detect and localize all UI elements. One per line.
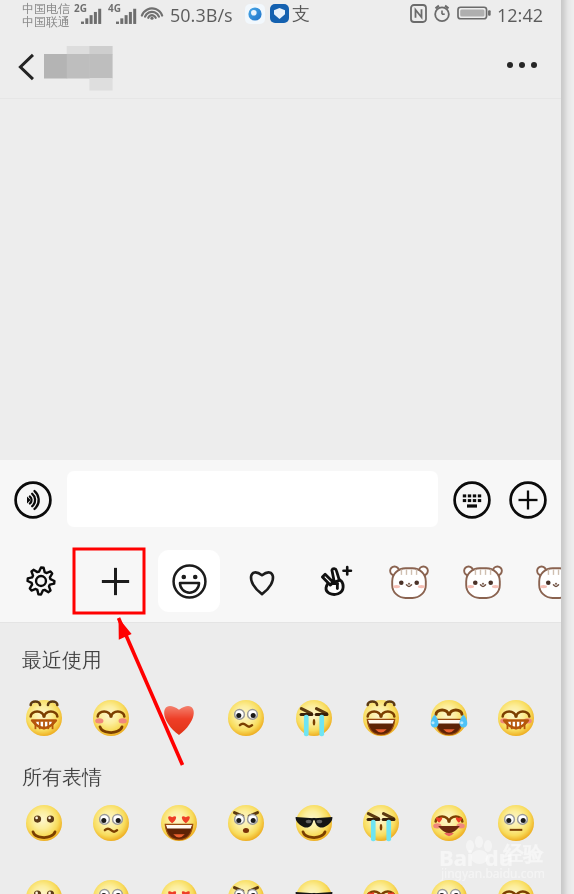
button[interactable]: Emoji 7	[498, 700, 534, 736]
button[interactable]: Emoji 20	[296, 880, 332, 894]
staticText: 所有表情	[22, 765, 102, 790]
button[interactable]: Emoji 8	[26, 805, 62, 841]
button[interactable]: More options	[496, 43, 548, 87]
button[interactable]: Keyboard	[453, 481, 491, 519]
staticText: 最近使用	[22, 648, 102, 673]
button[interactable]: Emoji 16	[26, 880, 62, 894]
staticText: 支	[292, 3, 310, 26]
button[interactable]: Emoji 21	[363, 880, 399, 894]
button[interactable]: Emoji 15	[498, 805, 534, 841]
button[interactable]: Sticker pack 1	[377, 549, 441, 613]
button[interactable]: Emoji 22	[431, 880, 467, 894]
button[interactable]: Emoji 5	[363, 700, 399, 736]
staticText: jingyan.baidu.com	[441, 865, 545, 881]
button[interactable]: Add sticker pack	[83, 549, 147, 613]
button[interactable]: Sticker pack 2	[451, 549, 515, 613]
staticText: 中国电信	[22, 1, 70, 16]
button[interactable]: Sticker pack 3	[524, 549, 574, 613]
button[interactable]: Emoji 1	[93, 700, 129, 736]
staticText: 经验	[503, 842, 543, 867]
button[interactable]: Favorites	[230, 549, 294, 613]
staticText: 50.3B/s	[170, 3, 233, 28]
button[interactable]: Emoji 18	[161, 880, 197, 894]
button[interactable]: Emoji 14	[431, 805, 467, 841]
button[interactable]: Emoji 13	[363, 805, 399, 841]
button[interactable]: Emoji 10	[161, 805, 197, 841]
button[interactable]: Emoji 17	[93, 880, 129, 894]
button[interactable]: Settings	[9, 549, 73, 613]
button[interactable]: Emoji 2	[161, 700, 197, 736]
button[interactable]: Emoji	[158, 550, 220, 612]
staticText: 4G	[108, 1, 121, 15]
button[interactable]: Emoji 3	[228, 700, 264, 736]
button[interactable]: Emoji 9	[93, 805, 129, 841]
button[interactable]: Back	[4, 45, 48, 89]
button[interactable]: Emoji 6	[431, 700, 467, 736]
button[interactable]: Emoji 23	[498, 880, 534, 894]
button[interactable]: Emoji 0	[26, 700, 62, 736]
staticText: 2G	[74, 1, 87, 15]
staticText: 12:42	[497, 3, 544, 28]
button[interactable]: Gesture stickers	[304, 549, 368, 613]
button[interactable]: Voice message	[14, 481, 52, 519]
staticText: 中国联通	[22, 14, 70, 29]
button[interactable]: Emoji 11	[228, 805, 264, 841]
staticText: Bai du	[439, 842, 514, 872]
button[interactable]: Emoji 12	[296, 805, 332, 841]
button[interactable]: Emoji 19	[228, 880, 264, 894]
button[interactable]: Emoji 4	[296, 700, 332, 736]
button[interactable]: Add	[509, 481, 547, 519]
